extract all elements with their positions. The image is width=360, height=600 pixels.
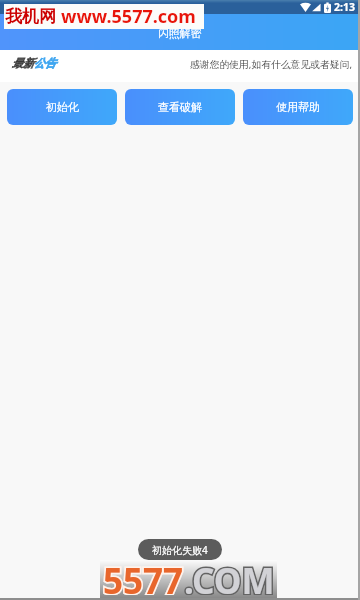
staticText: 感谢您的使用,如有什么意见或者疑问,请联系作者反馈 (190, 58, 360, 71)
staticText: 初始化 (46, 100, 79, 114)
button[interactable]: 查看破解 (125, 89, 235, 125)
staticText: 闪照解密 (158, 27, 202, 41)
staticText: 使用帮助 (276, 100, 320, 114)
staticText: www.5577.com (61, 4, 196, 29)
staticText: .COM (184, 557, 275, 595)
button[interactable]: 闪照解密 (0, 14, 360, 50)
staticText: 最新 (12, 56, 34, 70)
button[interactable]: 使用帮助 (243, 89, 353, 125)
button[interactable]: 初始化 (7, 89, 117, 125)
staticText: 公告 (34, 56, 56, 70)
staticText: 2:13 (334, 0, 355, 14)
staticText: 初始化失败4 (152, 543, 208, 557)
staticText: 公告 (34, 56, 56, 70)
button[interactable]: 初始化失败4 (152, 539, 208, 560)
staticText: 我机网 (5, 6, 56, 27)
staticText: 5577 (103, 557, 184, 595)
staticText: 查看破解 (158, 100, 202, 114)
staticText: 5577 (103, 557, 184, 595)
staticText: .COM (184, 557, 275, 595)
staticText: 最新 (12, 56, 34, 70)
